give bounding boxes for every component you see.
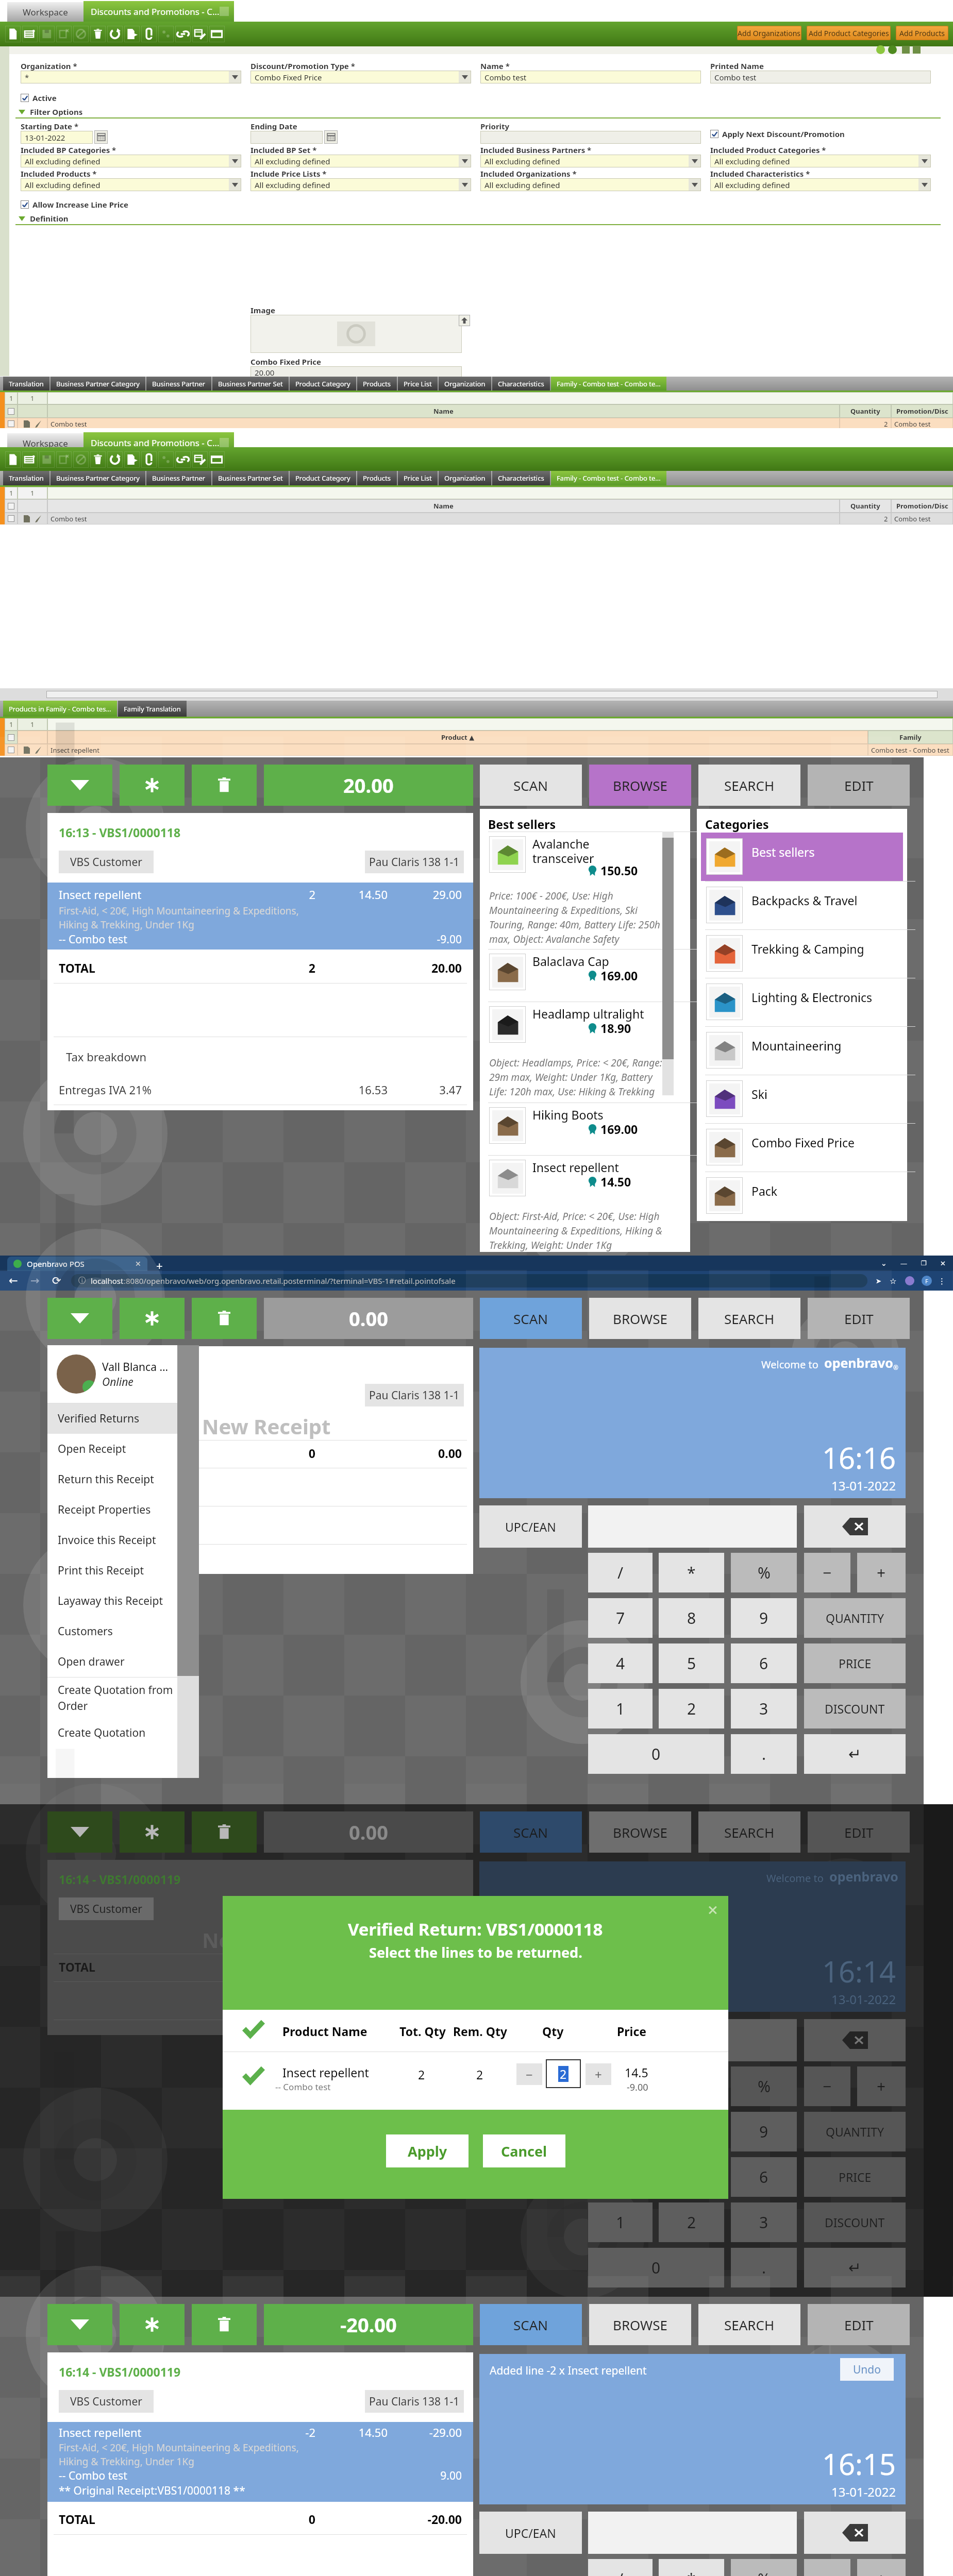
button[interactable]: Hiking Boots	[480, 1103, 690, 1155]
button[interactable]: .	[731, 1734, 797, 1774]
button[interactable]: SEARCH	[698, 2304, 800, 2345]
button[interactable]: Backpacks & Travel	[697, 881, 907, 929]
button[interactable]: Family - Combo test - Combo te...	[551, 471, 666, 485]
button[interactable]: +	[857, 1553, 906, 1592]
button[interactable]: -20.00	[264, 2304, 473, 2345]
button[interactable]	[588, 2019, 797, 2061]
button[interactable]: Create Quotation	[47, 1718, 177, 1748]
button[interactable]: PRICE	[804, 2157, 906, 2197]
button[interactable]: Organization	[439, 471, 491, 485]
button[interactable]: Toolbar action 1	[21, 24, 38, 44]
button[interactable]: SCAN	[480, 1298, 582, 1339]
button[interactable]: Multi-tool	[480, 1256, 690, 1275]
button[interactable]: All excluding defined	[250, 155, 471, 167]
button[interactable]: New receipt	[120, 1811, 185, 1853]
button[interactable]: Toolbar action 8	[140, 24, 157, 44]
button[interactable]: Toolbar action 12	[208, 24, 225, 44]
button[interactable]: 20.00	[264, 765, 473, 806]
button[interactable]: BROWSE	[589, 765, 691, 806]
button[interactable]: Active	[21, 93, 57, 103]
button[interactable]: Toolbar action 6	[106, 24, 123, 44]
button[interactable]: Business Partner	[146, 471, 211, 485]
button[interactable]: /	[588, 1553, 653, 1592]
button[interactable]: Print this Receipt	[47, 1555, 177, 1586]
button[interactable]: Reload	[51, 1275, 63, 1287]
button[interactable]: 0.00	[264, 1811, 473, 1853]
button[interactable]: Definition	[19, 213, 69, 224]
button[interactable]	[588, 1505, 797, 1548]
button[interactable]: Menu	[47, 765, 112, 806]
button[interactable]: Toolbar action 12	[208, 450, 225, 469]
button[interactable]: Create Quotation from Order	[47, 1677, 177, 1718]
button[interactable]: %	[731, 2066, 797, 2106]
button[interactable]: 2	[659, 2202, 724, 2242]
button[interactable]: Family Translation	[118, 701, 187, 717]
button[interactable]: 1	[588, 1689, 653, 1728]
button[interactable]: Products	[357, 377, 397, 391]
button[interactable]: Pick date	[324, 130, 338, 144]
button[interactable]: 7	[588, 1598, 653, 1638]
button[interactable]: Toolbar action 9	[157, 24, 174, 44]
button[interactable]: Characteristics	[492, 377, 550, 391]
button[interactable]: +	[857, 2559, 906, 2576]
button[interactable]: QUANTITY	[804, 1598, 906, 1638]
button[interactable]: 20.00	[250, 366, 462, 379]
button[interactable]: Add Products	[896, 26, 948, 40]
button[interactable]: /	[588, 2559, 653, 2576]
button[interactable]: Backspace	[804, 1505, 906, 1548]
button[interactable]: UPC/EAN	[479, 1505, 582, 1548]
button[interactable]: Toolbar action 0	[4, 24, 21, 44]
button[interactable]: Toolbar action 8	[140, 450, 157, 469]
button[interactable]: −	[804, 2559, 850, 2576]
button[interactable]	[480, 131, 701, 144]
button[interactable]: Add Organizations	[737, 26, 801, 40]
button[interactable]: Discounts and Promotions - Com...	[83, 432, 234, 453]
button[interactable]: Product Category	[290, 377, 356, 391]
button[interactable]: +	[857, 2066, 906, 2106]
button[interactable]: 5	[659, 1643, 724, 1683]
button[interactable]: Receipt Properties	[47, 1495, 177, 1525]
button[interactable]: /	[588, 2066, 653, 2106]
button[interactable]: Toolbar action 10	[174, 24, 191, 44]
button[interactable]: SCAN	[480, 2304, 582, 2345]
button[interactable]: New tab	[153, 1258, 166, 1271]
button[interactable]: EDIT	[808, 2304, 910, 2345]
button[interactable]: Menu	[47, 2304, 112, 2345]
button[interactable]: 4	[588, 1643, 653, 1683]
button[interactable]: 9	[731, 2112, 797, 2151]
button[interactable]: 1	[588, 2202, 653, 2242]
button[interactable]: Menu	[47, 1298, 112, 1339]
button[interactable]: Toolbar action 3	[55, 24, 72, 44]
button[interactable]: ↵	[804, 2248, 906, 2287]
button[interactable]: Translation	[3, 471, 49, 485]
button[interactable]: Headlamp ultralight	[480, 1002, 690, 1054]
button[interactable]: Toolbar action 5	[89, 450, 106, 469]
button[interactable]: Open drawer	[47, 1647, 177, 1677]
button[interactable]: Delete	[192, 1811, 257, 1853]
button[interactable]: 0	[588, 2248, 724, 2287]
button[interactable]: Layaway this Receipt	[47, 1586, 177, 1616]
button[interactable]: 0.00	[264, 1298, 473, 1339]
button[interactable]: Upload image	[459, 315, 470, 326]
button[interactable]: 2	[546, 2059, 581, 2088]
button[interactable]: Undo	[840, 2358, 894, 2381]
button[interactable]: Backspace	[804, 2512, 906, 2554]
button[interactable]: BROWSE	[589, 2304, 691, 2345]
button[interactable]: EDIT	[808, 765, 910, 806]
button[interactable]: Price List	[398, 377, 438, 391]
button[interactable]	[479, 2019, 582, 2061]
button[interactable]: Previous record	[876, 45, 885, 54]
button[interactable]: Toolbar action 4	[72, 24, 89, 44]
button[interactable]: Combo Fixed Price	[250, 71, 471, 83]
button[interactable]: DISCOUNT	[804, 1689, 906, 1728]
button[interactable]: %	[731, 2559, 797, 2576]
button[interactable]: Toolbar action 9	[157, 450, 174, 469]
button[interactable]: Products	[357, 471, 397, 485]
button[interactable]: VBS Customer	[59, 1897, 154, 1920]
button[interactable]: Business Partner	[146, 377, 211, 391]
button[interactable]: Characteristics	[492, 471, 550, 485]
button[interactable]: Apply	[386, 2134, 469, 2167]
button[interactable]: Add Product Categories	[807, 26, 891, 40]
